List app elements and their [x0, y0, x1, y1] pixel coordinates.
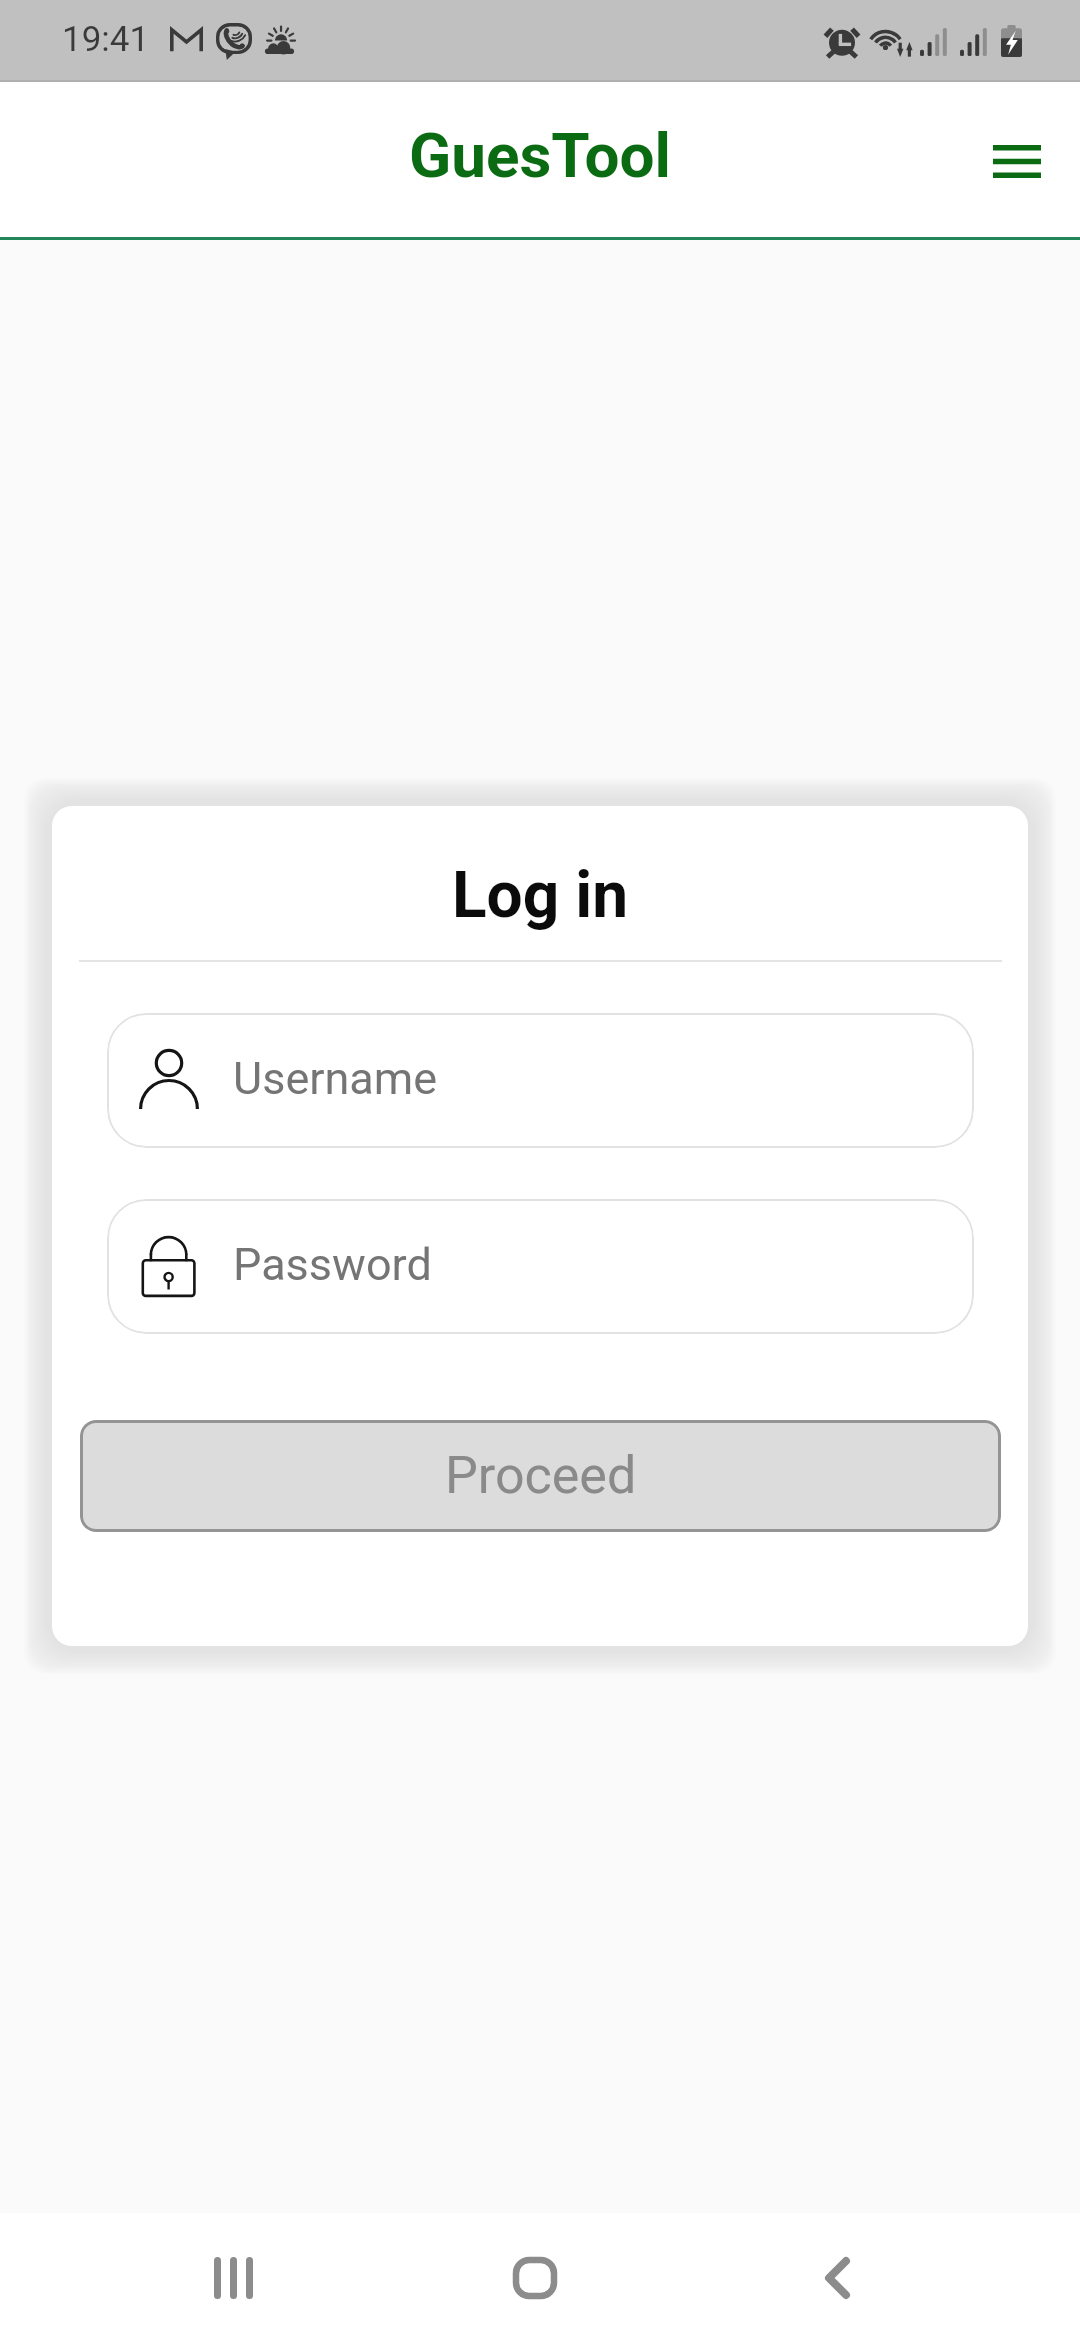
button[interactable]: Home [475, 2238, 595, 2318]
staticText: GuesTool [0, 119, 1080, 192]
button[interactable]: Password [107, 1199, 974, 1334]
button[interactable]: Recent apps [173, 2238, 293, 2318]
button[interactable]: Proceed [80, 1420, 1001, 1532]
staticText: Log in [52, 858, 1028, 933]
button[interactable]: Username [107, 1013, 974, 1148]
staticText: Proceed [445, 1445, 637, 1506]
button[interactable]: Menu [969, 116, 1065, 206]
staticText: Password [233, 1238, 432, 1291]
button[interactable]: Back [777, 2238, 897, 2318]
staticText: 19:41 [62, 19, 150, 60]
staticText: Username [233, 1052, 438, 1105]
